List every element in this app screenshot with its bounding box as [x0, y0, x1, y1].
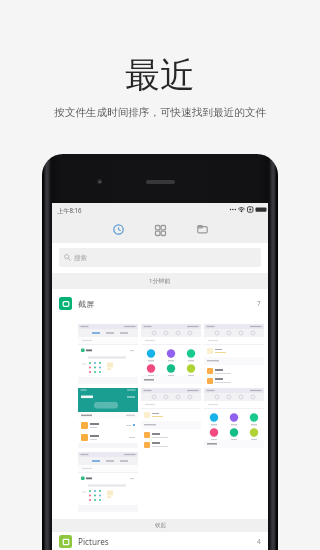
button[interactable]: 收起 [52, 519, 268, 532]
button[interactable]: Pictures [52, 532, 268, 550]
staticText: 7 [257, 299, 261, 308]
button[interactable]: Files [181, 216, 223, 243]
button[interactable] [78, 452, 138, 512]
button[interactable] [204, 324, 264, 384]
button[interactable]: 搜索 [59, 248, 261, 267]
button[interactable] [141, 388, 201, 448]
staticText: 上午8:16 [57, 206, 82, 214]
button[interactable] [204, 388, 264, 448]
staticText: 按文件生成时间排序，可快速找到最近的文件 [54, 106, 266, 119]
staticText: 最近 [125, 53, 195, 97]
button[interactable]: Categories [139, 216, 181, 243]
staticText: Pictures [78, 536, 109, 547]
button[interactable] [78, 324, 138, 384]
button[interactable]: 截屏 [52, 289, 268, 318]
button[interactable] [141, 324, 201, 384]
staticText: 4 [257, 537, 261, 546]
staticText: 截屏 [78, 299, 95, 309]
staticText: 收起 [155, 522, 166, 529]
staticText: 1分钟前 [149, 277, 171, 285]
button[interactable]: Recent [97, 216, 139, 243]
button[interactable] [78, 388, 138, 448]
staticText: 搜索 [74, 254, 87, 262]
